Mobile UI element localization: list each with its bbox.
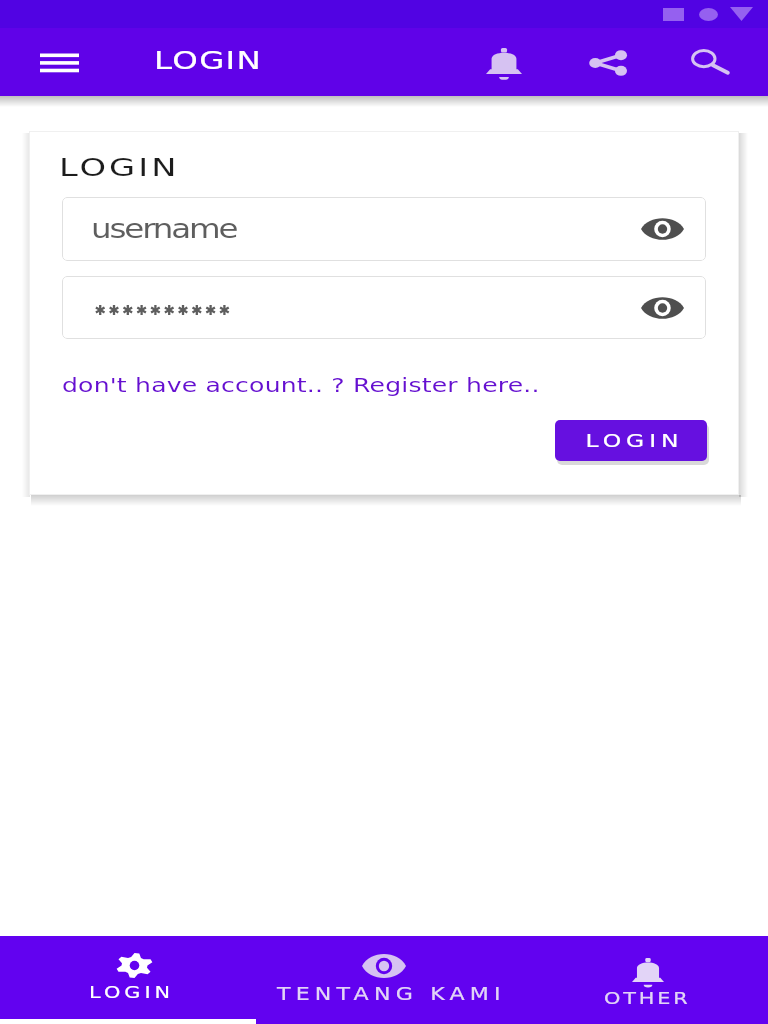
staticText: OTHER <box>604 989 691 1008</box>
staticText: LOGIN <box>59 153 180 182</box>
button[interactable]: Toggle password visibility <box>640 214 684 244</box>
button[interactable]: don't have account.. ? Register here.. <box>62 374 424 396</box>
staticText: username <box>91 214 237 244</box>
button[interactable]: Notifications <box>479 43 529 83</box>
button[interactable]: TENTANG KAMI <box>256 936 512 1024</box>
button[interactable]: Open navigation menu <box>30 45 90 81</box>
staticText: TENTANG KAMI <box>277 984 506 1004</box>
staticText: LOGIN <box>154 46 263 75</box>
staticText: LOGIN <box>89 983 175 1002</box>
button[interactable]: Password <box>62 276 706 339</box>
button[interactable]: Share <box>583 43 633 83</box>
button[interactable]: Search <box>684 42 734 82</box>
button[interactable]: OTHER <box>512 936 768 1024</box>
button[interactable]: LOGIN <box>0 936 256 1024</box>
staticText: LOGIN <box>586 430 684 451</box>
button[interactable]: Toggle password visibility <box>640 293 684 323</box>
button[interactable]: LOGIN <box>555 420 707 461</box>
button[interactable]: username <box>62 197 706 261</box>
